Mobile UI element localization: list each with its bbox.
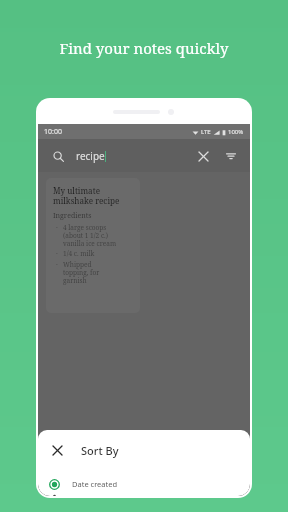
button[interactable]: Search xyxy=(48,146,68,166)
staticText: 10:00 xyxy=(44,127,62,137)
staticText: Whipped topping, for garnish xyxy=(63,260,100,285)
staticText: My ultimate milkshake recipe xyxy=(53,185,120,206)
button[interactable]: Date created xyxy=(38,474,250,494)
staticText: Date created xyxy=(72,479,118,489)
staticText: 1/4 c. milk xyxy=(63,249,95,258)
button[interactable]: My ultimate milkshake recipe xyxy=(46,178,140,313)
button[interactable]: Clear search xyxy=(192,145,214,167)
button[interactable]: Close xyxy=(47,440,67,460)
staticText: Find your notes quickly xyxy=(0,38,288,58)
staticText: Ingredients xyxy=(53,211,92,221)
staticText: 4 large scoops (about 1 1/2 c.) vanilla … xyxy=(63,223,117,248)
staticText: Sort By xyxy=(81,443,119,458)
button[interactable]: Filter xyxy=(220,145,242,167)
staticText: recipe xyxy=(76,149,105,163)
staticText: LTE xyxy=(201,128,211,136)
staticText: 100% xyxy=(228,128,244,136)
